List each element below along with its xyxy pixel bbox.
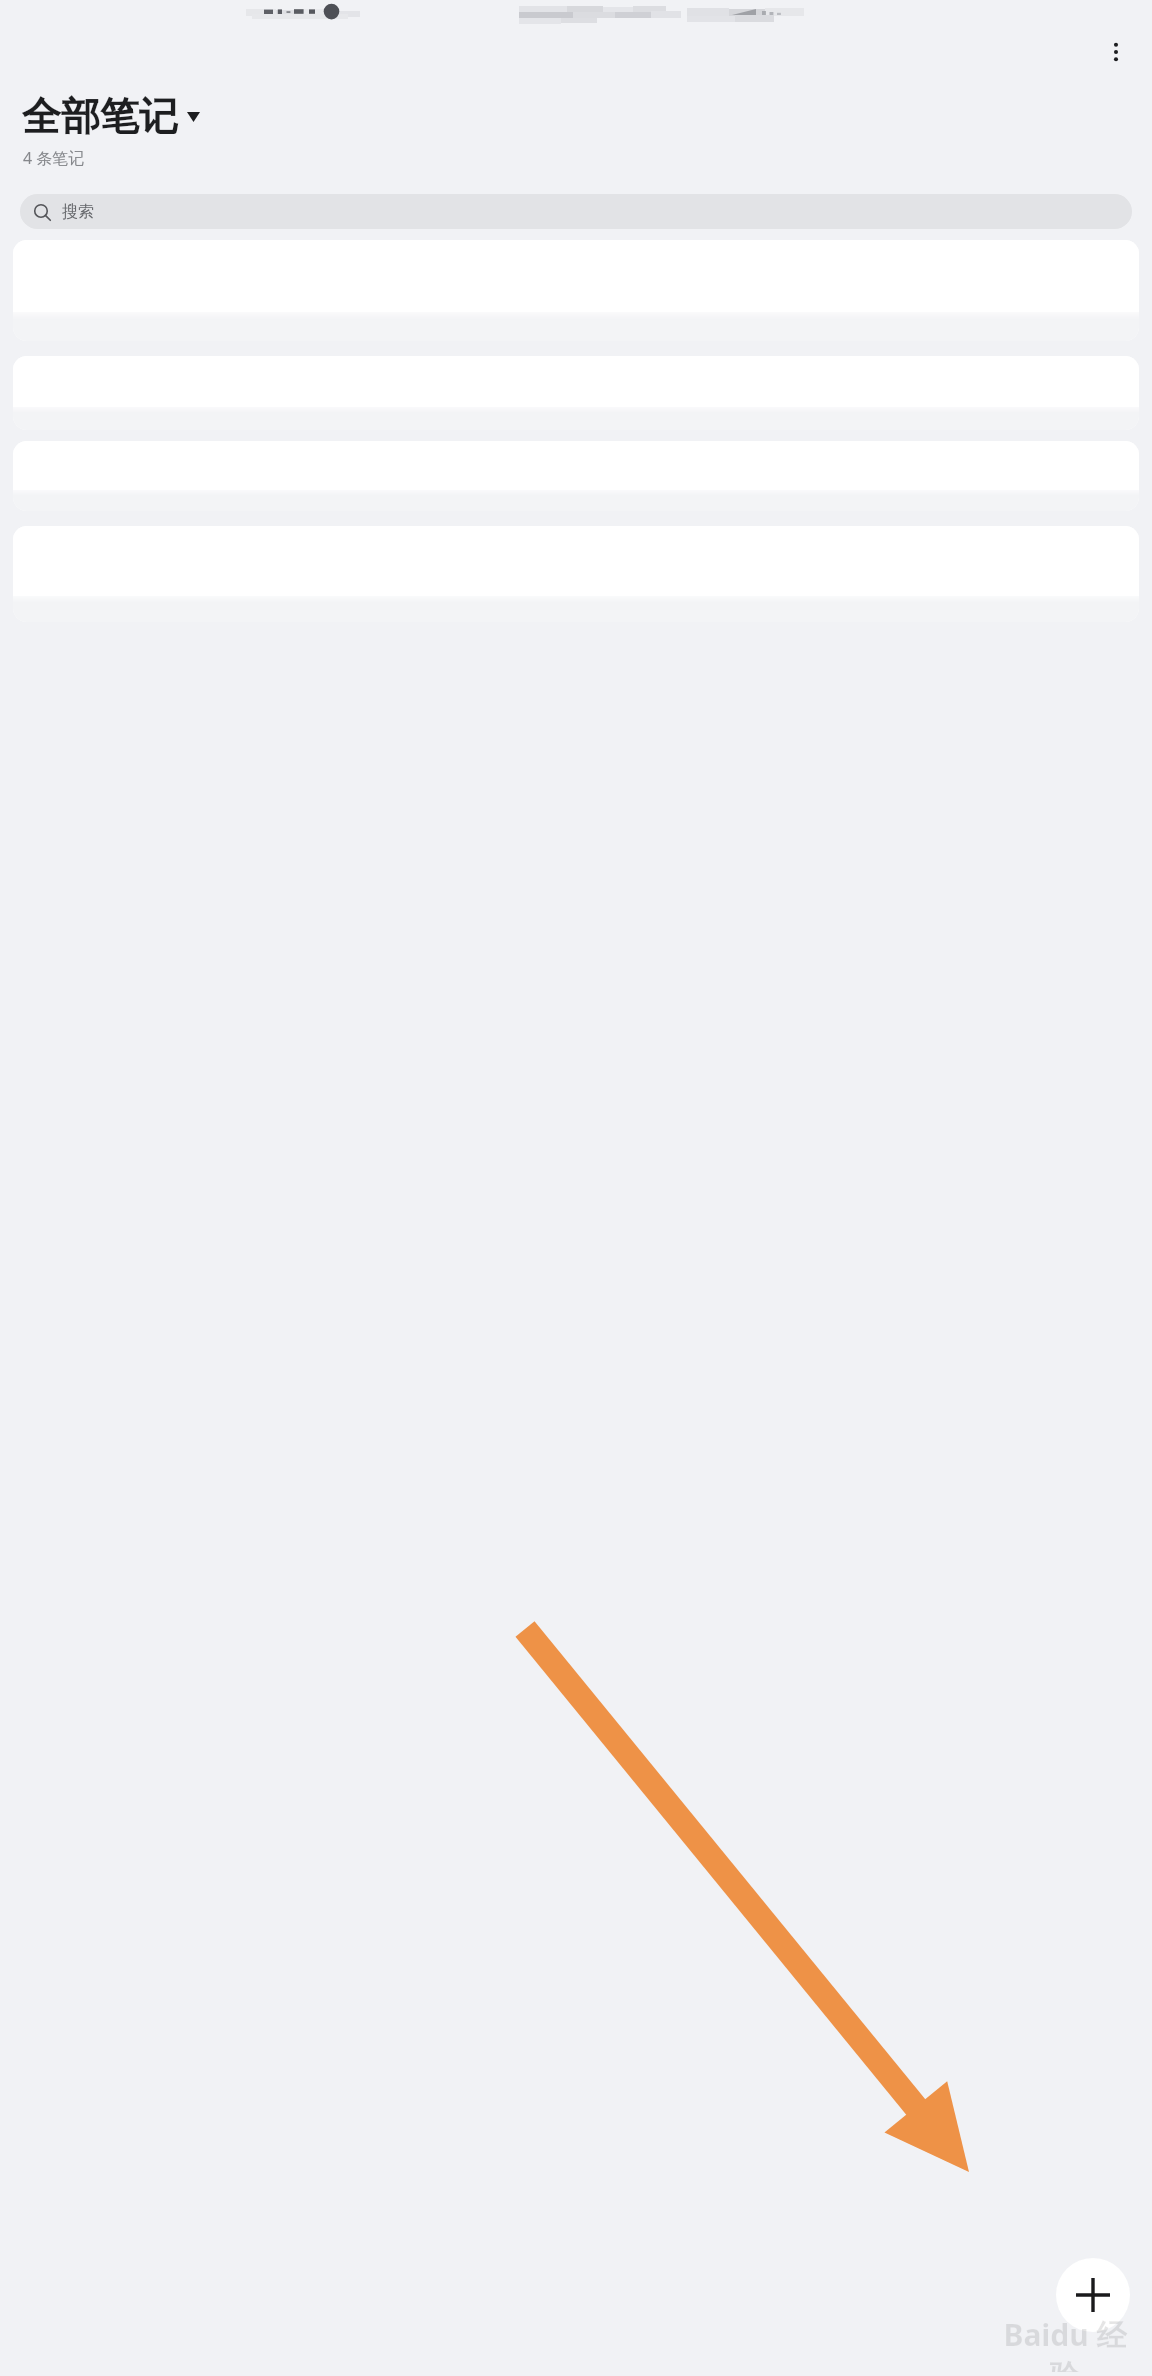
button[interactable]	[13, 441, 1139, 511]
button[interactable]	[13, 240, 1139, 341]
button[interactable]: New note	[1056, 2258, 1130, 2332]
staticText: 4 条笔记	[23, 147, 85, 169]
staticText: 全部笔记	[22, 92, 178, 141]
button[interactable]: More options	[1092, 28, 1140, 76]
button[interactable]	[13, 356, 1139, 430]
staticText: 搜索	[62, 202, 94, 222]
staticText: Baidu 经验	[990, 2314, 1140, 2372]
button[interactable]	[13, 526, 1139, 622]
button[interactable]: 全部笔记	[22, 90, 200, 143]
button[interactable]: 搜索	[20, 194, 1132, 229]
